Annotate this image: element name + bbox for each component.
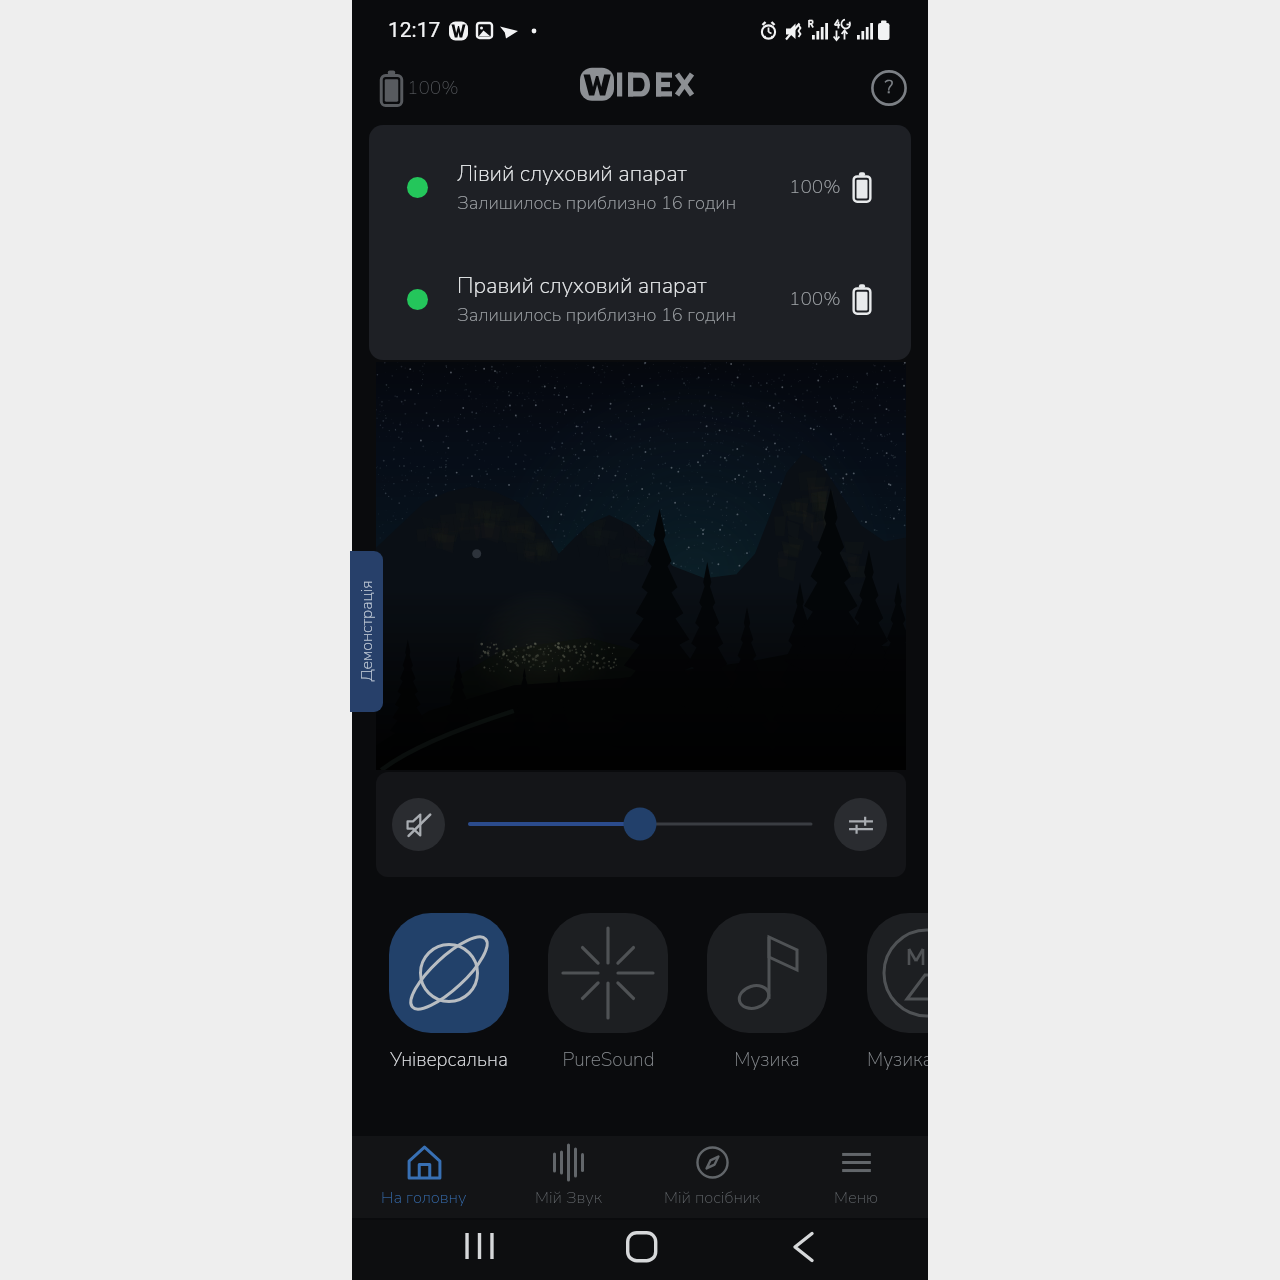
button[interactable]: Правий слуховий апарат	[369, 271, 911, 327]
staticText: Правий слуховий апарат	[457, 271, 707, 301]
button[interactable]: Меню	[784, 1136, 928, 1218]
staticText: ?	[885, 74, 894, 100]
staticText: 100%	[789, 286, 841, 312]
button[interactable]: Help	[866, 65, 912, 111]
button[interactable]: Мій посібник	[640, 1136, 784, 1218]
staticText: Універсальна	[390, 1047, 508, 1073]
button[interactable]: PureSound	[548, 913, 668, 1073]
staticText: 100%	[407, 75, 459, 101]
staticText: Залишилось приблизно 16 годин	[457, 302, 737, 327]
staticText: Мій Звук	[535, 1186, 602, 1209]
button[interactable]: Універсальна	[389, 913, 509, 1073]
button[interactable]: Музика в авто	[867, 913, 928, 1073]
button[interactable]: Демонстрація	[350, 551, 383, 712]
staticText: Музика в авто	[867, 1047, 928, 1073]
staticText: PureSound	[562, 1047, 655, 1073]
button[interactable]: Мій Звук	[496, 1136, 640, 1218]
staticText: Демонстрація	[356, 580, 378, 682]
button[interactable]: Музика	[707, 913, 827, 1073]
button[interactable]: Equalizer	[834, 798, 887, 851]
staticText: Меню	[834, 1186, 879, 1209]
staticText: 12:17	[388, 18, 441, 43]
staticText: Музика	[734, 1047, 800, 1073]
staticText: На головну	[381, 1186, 467, 1209]
staticText: Залишилось приблизно 16 годин	[457, 190, 737, 215]
staticText: 100%	[789, 174, 841, 200]
button[interactable]: Mute	[392, 798, 445, 851]
button[interactable]: Лівий слуховий апарат	[369, 159, 911, 215]
staticText: Лівий слуховий апарат	[457, 159, 687, 189]
staticText: Мій посібник	[664, 1186, 761, 1209]
button[interactable]: На головну	[352, 1136, 496, 1218]
